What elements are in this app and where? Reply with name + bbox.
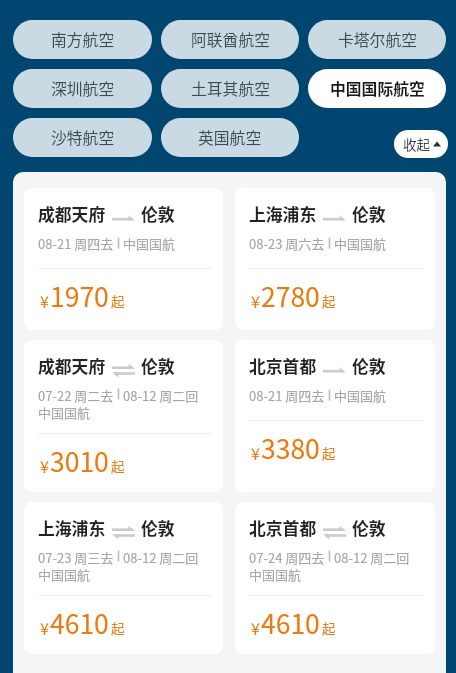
staticText: 2780 <box>261 276 320 314</box>
staticText: 深圳航空 <box>51 77 115 100</box>
staticText: 起 <box>111 618 125 638</box>
staticText: 南方航空 <box>51 28 115 51</box>
staticText: 起 <box>111 291 125 311</box>
staticText: 中国国际航空 <box>330 77 425 100</box>
staticText: 中国国航 <box>123 234 176 253</box>
button[interactable]: 深圳航空 <box>13 69 152 108</box>
button[interactable]: 阿联酋航空 <box>161 20 299 59</box>
staticText: 起 <box>111 456 125 476</box>
staticText: ¥ <box>251 289 260 312</box>
staticText: 08-12 周二回 <box>334 548 410 565</box>
staticText: 08-21 周四去 <box>249 386 325 405</box>
staticText: 成都天府 <box>38 354 106 378</box>
staticText: 1970 <box>50 276 109 314</box>
staticText: 08-12 周二回 <box>123 386 199 403</box>
button[interactable]: 北京首都 <box>235 340 435 492</box>
button[interactable]: 成都天府 <box>24 340 223 492</box>
staticText: ¥ <box>251 441 260 464</box>
staticText: 伦敦 <box>141 354 175 378</box>
staticText: 08-12 周二回 <box>123 548 199 565</box>
staticText: 08-23 周六去 <box>249 234 325 253</box>
staticText: 起 <box>322 443 336 463</box>
button[interactable]: 上海浦东 <box>235 188 435 330</box>
staticText: ¥ <box>251 616 260 639</box>
staticText: 上海浦东 <box>38 516 106 540</box>
staticText: 中国国航 <box>249 565 302 584</box>
staticText: 07-22 周二去 <box>38 386 114 403</box>
staticText: 中国国航 <box>38 565 91 584</box>
staticText: 中国国航 <box>38 403 91 422</box>
staticText: 沙特航空 <box>51 126 115 149</box>
staticText: 07-23 周三去 <box>38 548 114 565</box>
staticText: 北京首都 <box>249 516 317 540</box>
staticText: 北京首都 <box>249 354 317 378</box>
staticText: ¥ <box>40 289 49 312</box>
staticText: ¥ <box>40 454 49 477</box>
staticText: 4610 <box>50 603 109 641</box>
staticText: 伦敦 <box>141 516 175 540</box>
staticText: 07-24 周四去 <box>249 548 325 565</box>
staticText: ¥ <box>40 616 49 639</box>
staticText: 中国国航 <box>334 386 387 405</box>
staticText: 伦敦 <box>352 516 386 540</box>
button[interactable]: 收起 <box>394 130 448 158</box>
button[interactable]: 卡塔尔航空 <box>308 20 446 59</box>
button[interactable]: 中国国际航空 <box>308 69 446 108</box>
button[interactable]: 成都天府 <box>24 188 223 330</box>
button[interactable]: 土耳其航空 <box>161 69 299 108</box>
staticText: 3380 <box>261 428 320 466</box>
button[interactable]: 南方航空 <box>13 20 152 59</box>
staticText: 4610 <box>261 603 320 641</box>
button[interactable]: 上海浦东 <box>24 502 223 654</box>
staticText: 起 <box>322 291 336 311</box>
staticText: 收起 <box>403 134 430 154</box>
staticText: 上海浦东 <box>249 202 317 226</box>
button[interactable]: 沙特航空 <box>13 118 152 157</box>
staticText: 伦敦 <box>352 354 386 378</box>
staticText: 卡塔尔航空 <box>338 28 417 51</box>
staticText: 08-21 周四去 <box>38 234 114 253</box>
staticText: 起 <box>322 618 336 638</box>
staticText: 3010 <box>50 441 109 479</box>
staticText: 土耳其航空 <box>191 77 270 100</box>
button[interactable]: 英国航空 <box>161 118 299 157</box>
staticText: 成都天府 <box>38 202 106 226</box>
staticText: 阿联酋航空 <box>191 28 270 51</box>
staticText: 伦敦 <box>141 202 175 226</box>
staticText: 中国国航 <box>334 234 387 253</box>
button[interactable]: 北京首都 <box>235 502 435 654</box>
staticText: 伦敦 <box>352 202 386 226</box>
staticText: 英国航空 <box>198 126 262 149</box>
